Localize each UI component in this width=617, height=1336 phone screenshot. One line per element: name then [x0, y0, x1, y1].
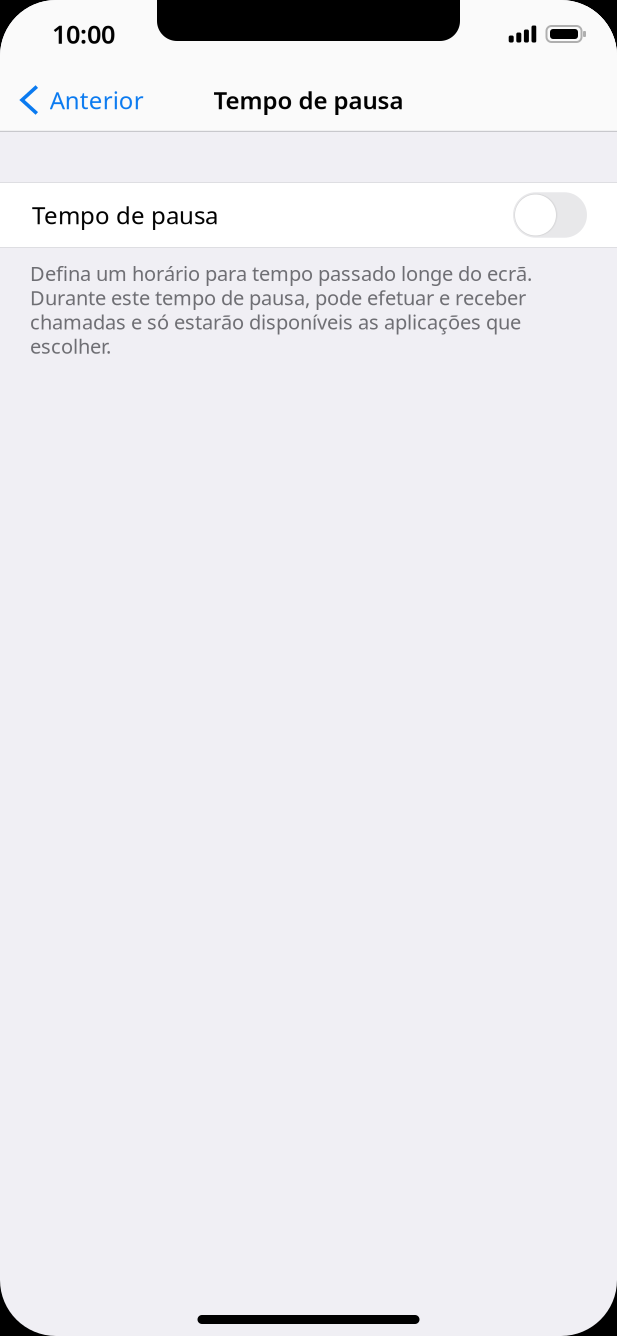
staticText: 10:00: [52, 17, 115, 51]
button[interactable]: Anterior: [0, 74, 144, 126]
staticText: Tempo de pausa: [32, 199, 218, 231]
staticText: Anterior: [50, 84, 144, 116]
button[interactable]: Tempo de pausa: [513, 192, 587, 238]
button[interactable]: Tempo de pausa: [0, 182, 617, 248]
staticText: Tempo de pausa: [213, 84, 403, 116]
staticText: Defina um horário para tempo passado lon…: [30, 260, 532, 359]
